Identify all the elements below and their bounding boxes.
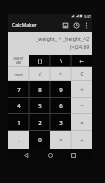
staticText: 6: [59, 102, 63, 110]
staticText: .: [18, 136, 20, 144]
staticText: ×: [80, 119, 84, 127]
button[interactable]: ×: [71, 114, 92, 131]
button[interactable]: =: [50, 131, 71, 149]
staticText: ^: [59, 71, 62, 78]
button[interactable]: INSERT VAR: [8, 55, 29, 67]
staticText: INSERT VAR: [13, 57, 24, 65]
button[interactable]: √: [29, 67, 50, 81]
staticText: 7: [17, 86, 21, 94]
staticText: 0: [38, 136, 42, 144]
button[interactable]: \: [50, 55, 71, 67]
staticText: 3:37: [84, 14, 91, 18]
staticText: 5: [38, 102, 42, 110]
button[interactable]: 7: [8, 81, 29, 98]
button[interactable]: ^: [50, 67, 71, 81]
button[interactable]: ( ): [29, 55, 50, 67]
staticText: ←: [79, 58, 84, 64]
button[interactable]: Recents: [68, 150, 79, 161]
staticText: 9: [59, 86, 63, 94]
button[interactable]: 2: [29, 114, 50, 131]
staticText: 8: [38, 86, 42, 94]
button[interactable]: mod: [8, 67, 29, 81]
staticText: CalcMaker: [12, 22, 37, 29]
button[interactable]: History: [71, 20, 82, 31]
staticText: ÷: [80, 136, 84, 144]
button[interactable]: Backspace: [71, 55, 92, 67]
staticText: =: [59, 136, 63, 144]
button[interactable]: 8: [29, 81, 50, 98]
button[interactable]: −: [71, 98, 92, 114]
button[interactable]: 9: [50, 81, 71, 98]
button[interactable]: Save: [60, 20, 71, 31]
button[interactable]: Home: [45, 150, 56, 161]
staticText: mod: [14, 72, 23, 77]
button[interactable]: 6: [50, 98, 71, 114]
staticText: (=)24.69: [70, 43, 90, 50]
staticText: 3: [59, 119, 63, 127]
button[interactable]: More options: [82, 21, 91, 30]
staticText: √: [38, 71, 42, 77]
button[interactable]: 0: [29, 131, 50, 149]
button[interactable]: ÷: [71, 131, 92, 149]
button[interactable]: 1: [8, 114, 29, 131]
button[interactable]: +: [71, 81, 92, 98]
button[interactable]: 3: [50, 114, 71, 131]
button[interactable]: 5: [29, 98, 50, 114]
staticText: 2: [38, 119, 42, 127]
staticText: ( ): [38, 58, 42, 64]
staticText: +: [80, 86, 84, 94]
button[interactable]: C: [71, 67, 92, 81]
staticText: \: [60, 58, 62, 64]
button[interactable]: 4: [8, 98, 29, 114]
staticText: 4: [17, 102, 21, 110]
button[interactable]: Back: [21, 150, 32, 161]
staticText: 1: [17, 119, 21, 127]
staticText: −: [80, 102, 84, 110]
staticText: C: [80, 71, 84, 78]
staticText: _weight_ ÷ _height_^2: [36, 35, 90, 42]
